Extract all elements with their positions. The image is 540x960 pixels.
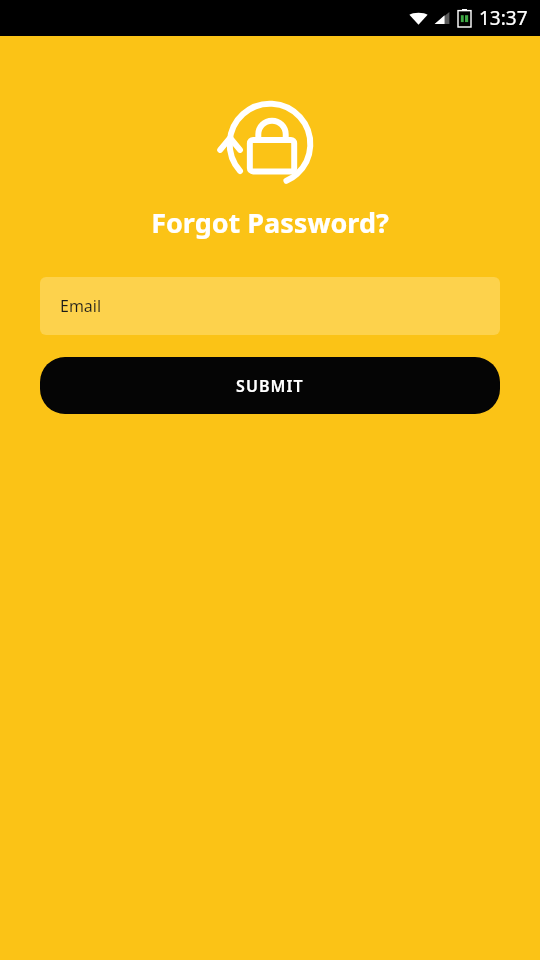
- staticText: Email: [60, 295, 102, 317]
- button[interactable]: Email: [40, 277, 500, 335]
- staticText: SUBMIT: [236, 375, 304, 397]
- staticText: 13:37: [479, 5, 528, 31]
- staticText: Forgot Password?: [151, 204, 389, 241]
- button[interactable]: SUBMIT: [40, 357, 500, 414]
